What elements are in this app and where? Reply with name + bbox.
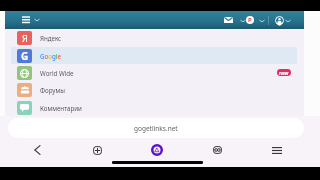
button[interactable]: Mail: [221, 12, 236, 28]
staticText: Форумы: [40, 86, 65, 94]
staticText: gogetlinks.net: [134, 124, 178, 133]
button[interactable]: gogetlinks.net: [8, 118, 304, 138]
staticText: Google: [40, 52, 61, 60]
staticText: World Wide: [40, 69, 74, 77]
button[interactable]: New tab: [80, 139, 114, 161]
button[interactable]: Assistant: [140, 139, 174, 161]
button[interactable]: Menu: [18, 13, 42, 27]
button[interactable]: Tabs: [200, 139, 234, 161]
button[interactable]: Я: [11, 29, 297, 46]
button[interactable]: Services: [243, 12, 256, 28]
button[interactable]: Menu: [260, 139, 294, 161]
staticText: Я: [22, 32, 28, 44]
button[interactable]: Back: [20, 139, 54, 161]
button[interactable]: Account: [272, 12, 287, 28]
staticText: G: [21, 49, 29, 63]
staticText: new: [279, 70, 289, 76]
staticText: Комментарии: [40, 104, 82, 112]
staticText: Яндекс: [40, 34, 62, 42]
button[interactable]: Форумы: [11, 81, 297, 98]
button[interactable]: Комментарии: [11, 99, 297, 116]
button[interactable]: G: [11, 47, 297, 64]
staticText: P: [248, 16, 252, 24]
button[interactable]: World Wide: [11, 64, 297, 81]
